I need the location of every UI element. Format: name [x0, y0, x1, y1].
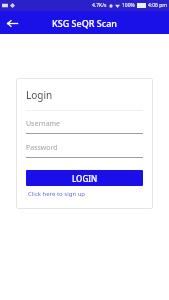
staticText: Password [26, 143, 58, 153]
staticText: Username [26, 119, 61, 129]
staticText: 100% [122, 2, 135, 9]
button[interactable]: Username [26, 119, 143, 134]
button[interactable]: Password [26, 143, 143, 158]
staticText: 4.7K/s [92, 2, 107, 9]
staticText: Click here to sign up [28, 190, 86, 198]
staticText: KSG SeQR Scan [52, 17, 117, 29]
button[interactable]: LOGIN [26, 170, 143, 186]
button[interactable]: Back [3, 14, 21, 32]
staticText: Login [26, 88, 53, 102]
button[interactable]: Click here to sign up [28, 190, 86, 198]
staticText: LOGIN [72, 173, 98, 184]
staticText: 4:06 pm [148, 2, 167, 9]
